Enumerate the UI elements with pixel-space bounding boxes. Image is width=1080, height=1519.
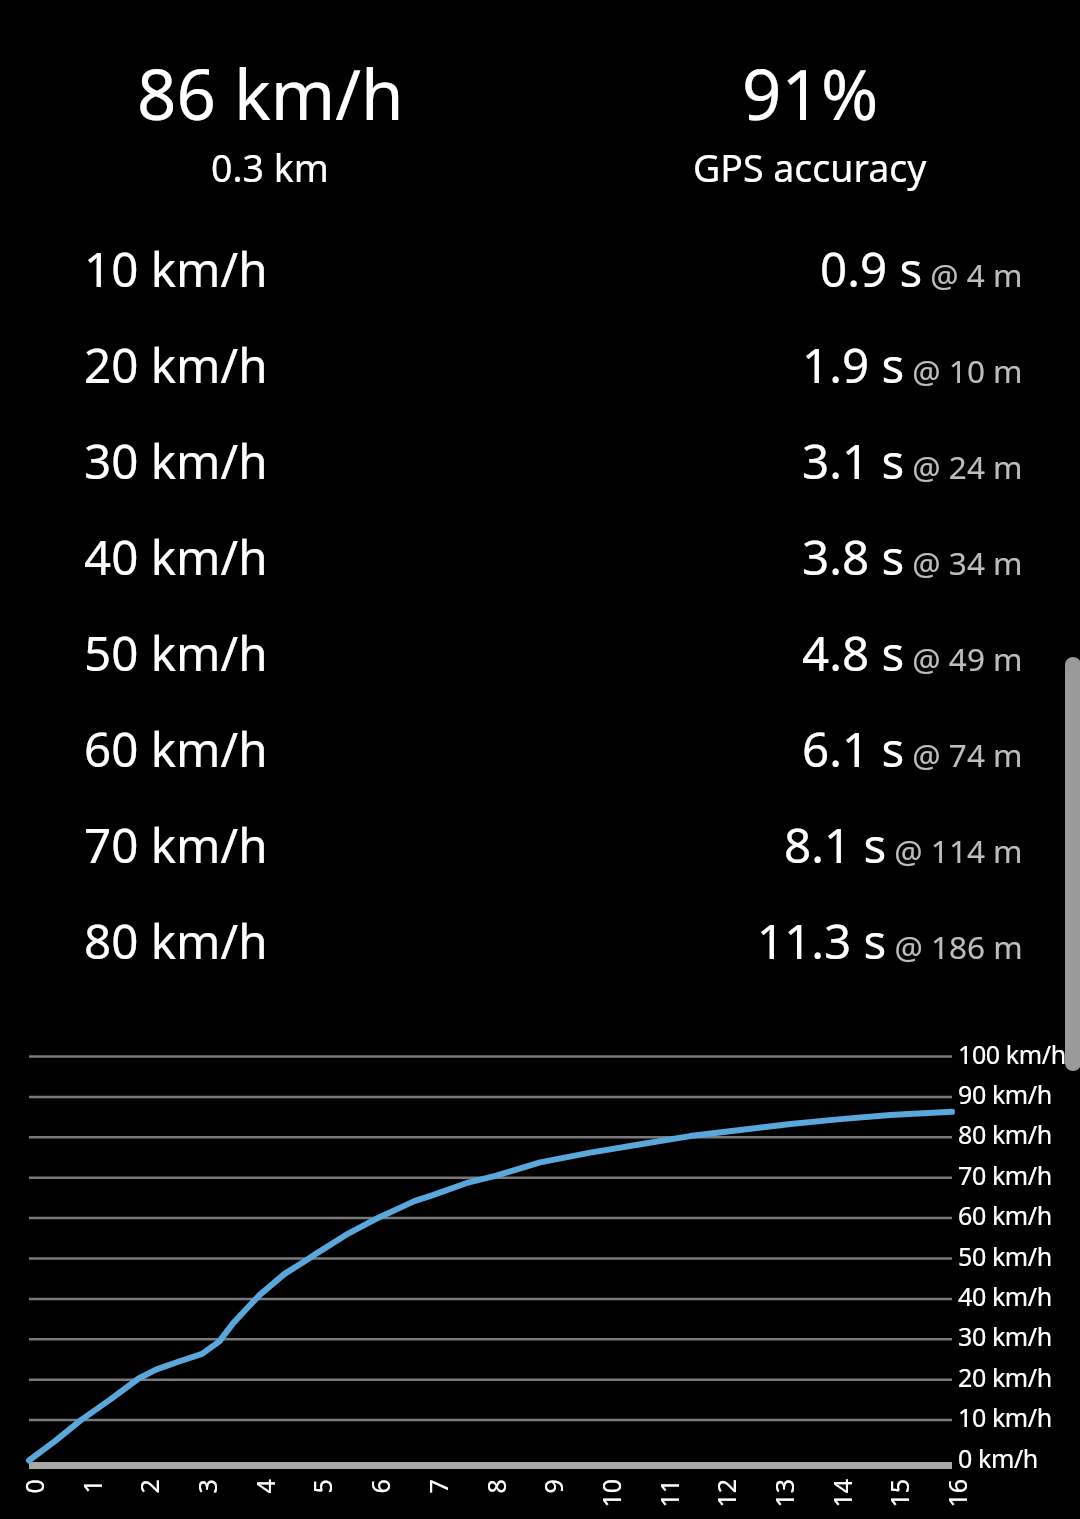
staticText: 20 km/h xyxy=(84,332,268,397)
staticText: 7 xyxy=(420,1478,452,1493)
staticText: 4.8 s @ 49 m xyxy=(802,620,1023,685)
staticText: 60 km/h xyxy=(84,716,268,781)
staticText: 70 km/h xyxy=(958,1158,1052,1190)
staticText: 40 km/h xyxy=(958,1279,1052,1311)
button[interactable]: 60 km/h xyxy=(0,700,1080,796)
staticText: 8 xyxy=(478,1478,510,1493)
staticText: 20 km/h xyxy=(958,1360,1052,1392)
button[interactable]: 80 km/h xyxy=(0,892,1080,988)
staticText: 10 xyxy=(593,1478,625,1507)
staticText: 80 km/h xyxy=(84,908,268,973)
staticText: 40 km/h xyxy=(84,524,268,589)
staticText: 3 xyxy=(189,1478,221,1493)
staticText: 6.1 s @ 74 m xyxy=(802,716,1023,781)
staticText: 3.1 s @ 24 m xyxy=(802,428,1023,493)
staticText: 6 xyxy=(362,1478,394,1493)
button[interactable]: 30 km/h xyxy=(0,412,1080,508)
staticText: 30 km/h xyxy=(958,1319,1052,1351)
staticText: 10 km/h xyxy=(84,236,268,301)
staticText: 30 km/h xyxy=(84,428,268,493)
staticText: 0 xyxy=(16,1478,48,1493)
staticText: 1.9 s @ 10 m xyxy=(802,332,1023,397)
staticText: 3.8 s @ 34 m xyxy=(802,524,1023,589)
staticText: 4 xyxy=(247,1478,279,1493)
staticText: 10 km/h xyxy=(958,1400,1052,1432)
staticText: 14 xyxy=(824,1478,856,1507)
staticText: 11.3 s @ 186 m xyxy=(757,908,1023,973)
button[interactable]: 20 km/h xyxy=(0,316,1080,412)
staticText: 91% xyxy=(742,46,879,140)
staticText: 8.1 s @ 114 m xyxy=(784,812,1023,877)
staticText: 0.9 s @ 4 m xyxy=(820,236,1023,301)
button[interactable]: 86 km/h xyxy=(0,46,540,193)
staticText: 12 xyxy=(708,1478,740,1507)
staticText: 0.3 km xyxy=(211,142,329,193)
staticText: 1 xyxy=(74,1478,106,1493)
staticText: 50 km/h xyxy=(958,1239,1052,1271)
staticText: GPS accuracy xyxy=(693,142,927,193)
button[interactable]: 40 km/h xyxy=(0,508,1080,604)
button[interactable]: 10 km/h xyxy=(0,220,1080,316)
staticText: 90 km/h xyxy=(958,1077,1052,1109)
staticText: 9 xyxy=(535,1478,567,1493)
button[interactable]: 91% xyxy=(540,46,1080,193)
staticText: 86 km/h xyxy=(137,46,404,140)
staticText: 15 xyxy=(881,1478,913,1507)
staticText: 13 xyxy=(766,1478,798,1507)
staticText: 50 km/h xyxy=(84,620,268,685)
staticText: 11 xyxy=(651,1478,683,1507)
staticText: 80 km/h xyxy=(958,1117,1052,1149)
button[interactable]: 50 km/h xyxy=(0,604,1080,700)
staticText: 0 km/h xyxy=(958,1441,1038,1473)
staticText: 100 km/h xyxy=(958,1037,1066,1069)
staticText: 16 xyxy=(939,1478,971,1507)
staticText: 60 km/h xyxy=(958,1198,1052,1230)
staticText: 70 km/h xyxy=(84,812,268,877)
staticText: 5 xyxy=(304,1478,336,1493)
staticText: 2 xyxy=(131,1478,163,1493)
button[interactable]: 70 km/h xyxy=(0,796,1080,892)
